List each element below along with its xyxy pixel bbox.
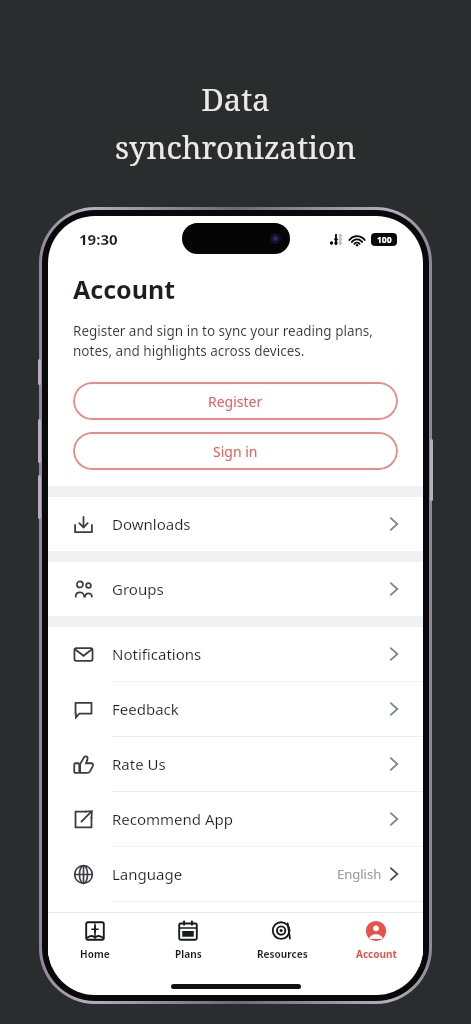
button[interactable]: Plans	[141, 913, 235, 967]
staticText: Data	[201, 78, 270, 120]
button[interactable]: Notifications	[48, 627, 423, 682]
staticText: Register	[208, 392, 263, 411]
staticText: 100	[377, 234, 392, 246]
button[interactable]: Home	[48, 913, 141, 967]
staticText: Plans	[175, 947, 202, 961]
staticText: Downloads	[112, 514, 390, 534]
button[interactable]: Recommend App	[48, 792, 423, 847]
staticText: Settings	[112, 919, 390, 939]
button[interactable]: Sign in	[73, 432, 398, 470]
staticText: synchronization	[115, 126, 356, 168]
button[interactable]: Language	[48, 847, 423, 902]
staticText: Language	[112, 864, 337, 884]
staticText: English	[337, 865, 382, 883]
staticText: Register and sign in to sync your readin…	[73, 322, 403, 360]
staticText: 19:30	[79, 229, 118, 249]
button[interactable]: Downloads	[48, 497, 423, 551]
button[interactable]: Resources	[235, 913, 329, 967]
button[interactable]: Register	[73, 382, 398, 420]
button[interactable]: Rate Us	[48, 737, 423, 792]
staticText: Resources	[257, 947, 308, 961]
staticText: Sign in	[213, 442, 258, 461]
staticText: Home	[80, 947, 110, 961]
staticText: Notifications	[112, 644, 390, 664]
staticText: Rate Us	[112, 754, 390, 774]
button[interactable]: Groups	[48, 562, 423, 616]
staticText: Recommend App	[112, 809, 390, 829]
button[interactable]: Settings	[48, 902, 423, 956]
staticText: Account	[73, 272, 176, 306]
staticText: Feedback	[112, 699, 390, 719]
button[interactable]: Feedback	[48, 682, 423, 737]
staticText: Account	[356, 947, 397, 961]
staticText: Groups	[112, 579, 390, 599]
button[interactable]: Account	[329, 913, 423, 967]
